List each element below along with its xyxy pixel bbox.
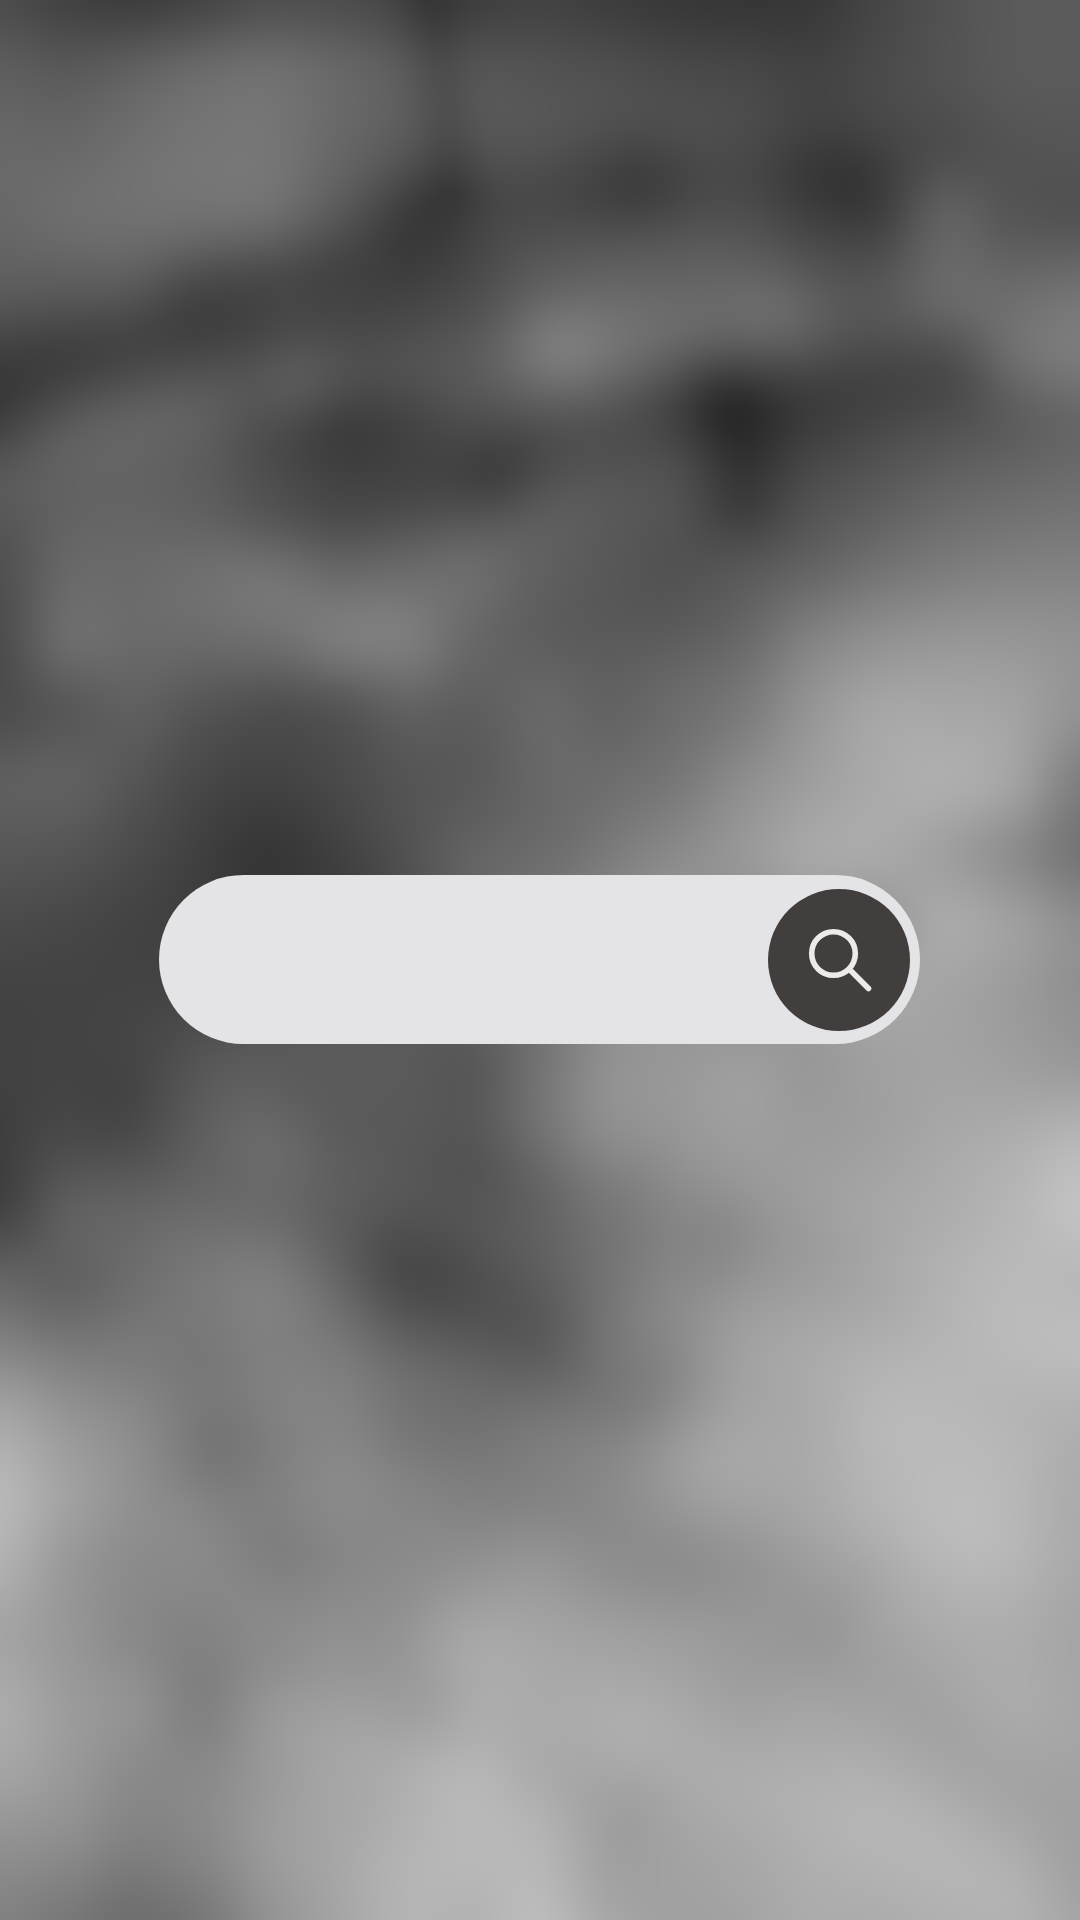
button[interactable]: Search bbox=[159, 875, 920, 1044]
button[interactable]: Search bbox=[768, 889, 910, 1031]
